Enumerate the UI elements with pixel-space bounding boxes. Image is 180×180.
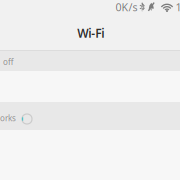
button[interactable]: orks	[0, 102, 180, 130]
button[interactable]: off	[0, 51, 180, 71]
staticText: 1	[175, 0, 180, 14]
staticText: off	[3, 57, 14, 67]
staticText: 0K/s	[115, 0, 137, 14]
staticText: Wi-Fi	[77, 25, 104, 41]
staticText: orks	[0, 113, 16, 123]
